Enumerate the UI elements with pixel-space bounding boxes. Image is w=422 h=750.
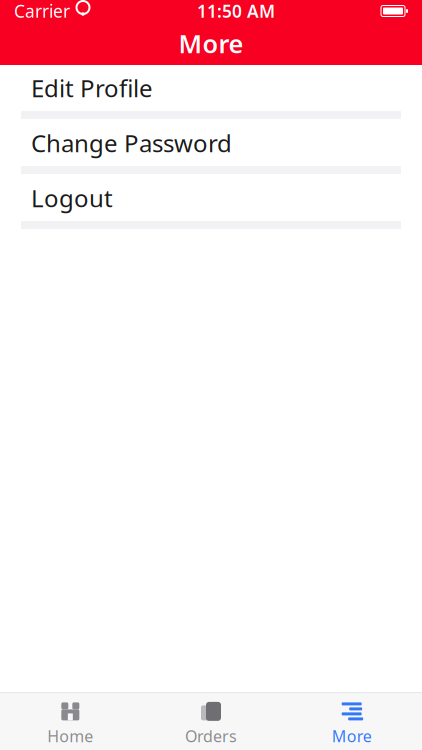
button[interactable]: Orders xyxy=(141,693,281,750)
staticText: Carrier xyxy=(14,0,70,22)
staticText: More xyxy=(332,725,372,747)
button[interactable]: Change Password xyxy=(0,120,422,175)
staticText: Logout xyxy=(31,182,113,214)
button[interactable]: Edit Profile xyxy=(0,65,422,120)
staticText: 11:50 AM xyxy=(197,0,275,22)
staticText: Change Password xyxy=(31,127,232,159)
button[interactable]: Logout xyxy=(0,175,422,230)
staticText: Home xyxy=(47,725,93,747)
staticText: More xyxy=(178,27,243,60)
staticText: Edit Profile xyxy=(31,72,153,104)
button[interactable]: More xyxy=(281,693,422,750)
staticText: Orders xyxy=(185,725,237,747)
button[interactable]: Home xyxy=(0,693,141,750)
